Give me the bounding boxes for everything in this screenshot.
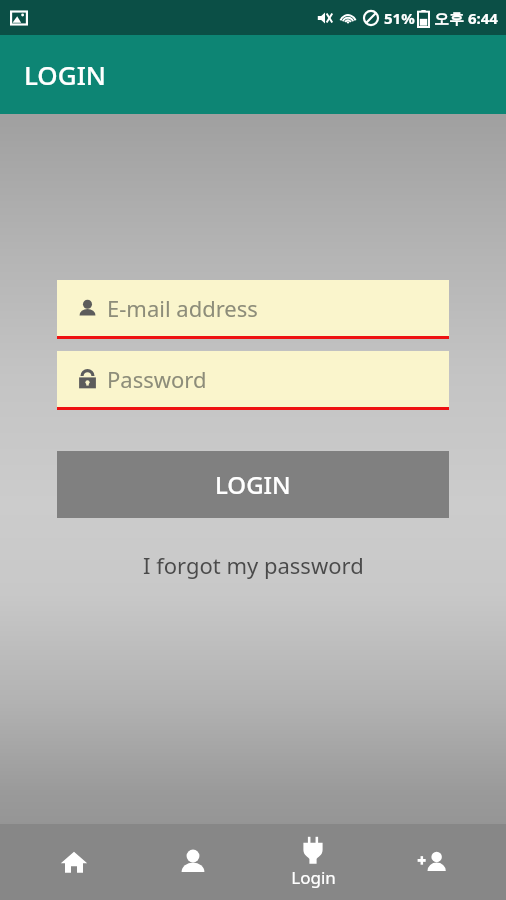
staticText: LOGIN [24, 57, 107, 92]
staticText: 오후 6:44 [434, 8, 498, 28]
staticText: 51% [384, 8, 415, 28]
staticText: I forgot my password [143, 550, 364, 580]
button[interactable]: Login [268, 824, 358, 900]
staticText: Login [291, 866, 336, 889]
button[interactable]: LOGIN [57, 451, 449, 518]
button[interactable]: I forgot my password [57, 550, 449, 580]
button[interactable]: E-mail address [57, 280, 449, 339]
staticText: Password [107, 364, 207, 394]
button[interactable]: Home [29, 824, 119, 900]
staticText: E-mail address [107, 293, 258, 323]
button[interactable]: Sign up [387, 824, 477, 900]
button[interactable]: Password [57, 351, 449, 410]
staticText: LOGIN [215, 468, 291, 501]
button[interactable]: Profile [148, 824, 238, 900]
